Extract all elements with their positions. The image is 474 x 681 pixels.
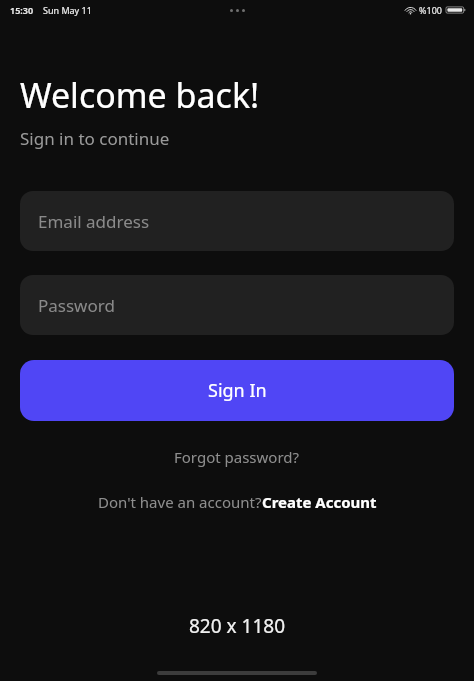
staticText: Don't have an account? [98,492,262,512]
button[interactable]: Password [20,275,454,335]
staticText: 15:30 [10,4,34,16]
staticText: 820 x 1180 [189,613,286,639]
staticText: Password [38,294,115,317]
staticText: Create Account [262,492,377,512]
staticText: Sign in to continue [20,127,170,150]
button[interactable]: Create Account [262,492,377,512]
button[interactable]: Sign In [20,360,454,421]
staticText: Welcome back! [20,72,260,118]
staticText: Forgot password? [174,447,300,467]
staticText: %100 [419,4,442,16]
button[interactable]: Email address [20,191,454,251]
staticText: Sign In [208,378,267,403]
staticText: Sun May 11 [43,4,92,16]
button[interactable]: Forgot password? [0,443,474,471]
staticText: Email address [38,210,150,233]
